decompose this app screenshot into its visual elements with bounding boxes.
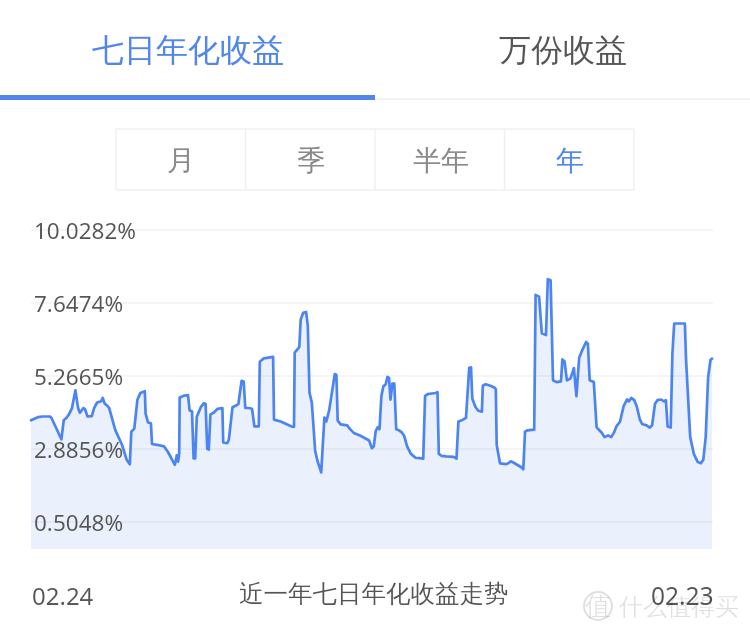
staticText: 02.24 (32, 579, 94, 612)
staticText: 月 (167, 143, 195, 178)
button[interactable]: 七日年化收益 (0, 0, 375, 100)
staticText: 10.0282% (34, 215, 136, 246)
button[interactable]: 半年 (376, 129, 506, 190)
staticText: 0.5048% (34, 507, 124, 538)
staticText: 年 (556, 143, 584, 178)
button[interactable]: 年 (506, 129, 634, 190)
staticText: 5.2665% (34, 361, 124, 392)
button[interactable]: 月 (116, 129, 246, 190)
staticText: 02.23 (651, 579, 714, 612)
staticText: 什么值得买 (619, 592, 739, 622)
staticText: 半年 (413, 143, 469, 178)
button[interactable]: 季 (246, 129, 376, 190)
staticText: 值 (585, 590, 611, 623)
staticText: 万份收益 (499, 30, 627, 70)
staticText: 七日年化收益 (92, 30, 284, 70)
staticText: 近一年七日年化收益走势 (239, 578, 509, 609)
staticText: 2.8856% (34, 434, 124, 465)
button[interactable]: 万份收益 (375, 0, 750, 100)
staticText: 季 (297, 143, 325, 178)
staticText: 7.6474% (34, 288, 124, 319)
